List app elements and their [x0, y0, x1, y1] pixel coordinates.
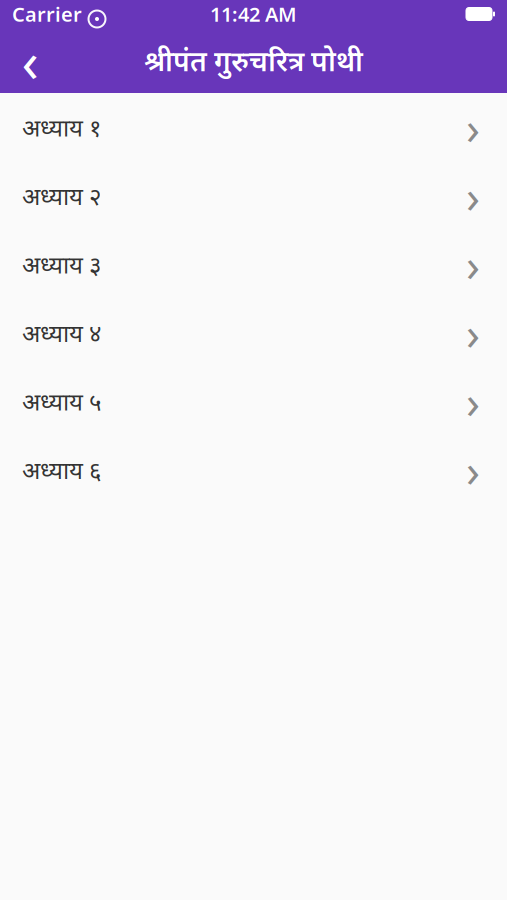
- button[interactable]: Back: [8, 38, 52, 82]
- button[interactable]: अध्याय ५: [0, 367, 507, 435]
- button[interactable]: अध्याय ६: [0, 435, 507, 504]
- staticText: ›: [466, 440, 480, 500]
- staticText: अध्याय २: [22, 180, 101, 212]
- button[interactable]: अध्याय २: [0, 161, 507, 230]
- staticText: अध्याय ३: [22, 248, 101, 280]
- staticText: ›: [466, 234, 480, 294]
- staticText: अध्याय ४: [22, 317, 101, 349]
- staticText: ›: [466, 166, 480, 226]
- button[interactable]: अध्याय १: [0, 93, 507, 161]
- staticText: अध्याय ६: [22, 454, 101, 486]
- button[interactable]: अध्याय ४: [0, 298, 507, 367]
- staticText: अध्याय १: [22, 111, 101, 143]
- staticText: ‹: [21, 23, 38, 98]
- staticText: श्रीपंत गुरुचरित्र पोथी: [144, 42, 363, 79]
- staticText: ›: [466, 371, 480, 431]
- staticText: ›: [466, 97, 480, 157]
- staticText: Carrier: [12, 1, 82, 27]
- staticText: 11:42 AM: [210, 1, 297, 27]
- staticText: अध्याय ५: [22, 385, 101, 417]
- staticText: ›: [466, 303, 480, 363]
- button[interactable]: अध्याय ३: [0, 230, 507, 298]
